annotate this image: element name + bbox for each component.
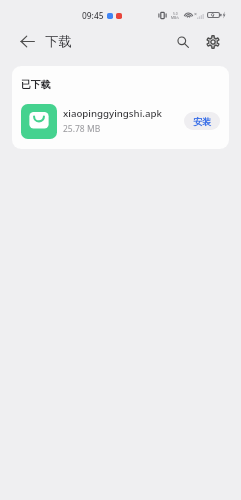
staticText: xiaopinggyingshi.apk xyxy=(63,107,162,120)
button[interactable]: Back xyxy=(13,27,42,56)
staticText: 已下载 xyxy=(21,79,51,91)
staticText: 25.78 MB xyxy=(63,123,101,135)
button[interactable]: Settings xyxy=(199,28,227,56)
staticText: 09:45 xyxy=(82,10,104,21)
staticText: × xyxy=(194,10,197,17)
button[interactable]: 安装 xyxy=(184,112,220,130)
staticText: 下载 xyxy=(45,33,72,50)
staticText: MB/s xyxy=(171,15,179,19)
staticText: 5.0 xyxy=(173,11,178,15)
button[interactable]: Search xyxy=(169,28,197,56)
staticText: 安装 xyxy=(193,116,212,127)
